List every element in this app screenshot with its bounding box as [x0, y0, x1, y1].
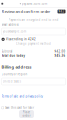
staticText: Total due today — [1, 54, 24, 57]
staticText: Subtotal — [1, 50, 12, 53]
staticText: $42 — [58, 10, 64, 13]
button[interactable]: Save this card for later — [1, 106, 65, 109]
staticText: Change payment method — [16, 42, 51, 45]
button[interactable]: Terms of sale and privacy policy — [1, 95, 65, 98]
staticText: you@example.com — [3, 30, 26, 33]
button[interactable]: Place order — [19, 110, 34, 118]
staticText: Visa ending in 4242 — [6, 37, 36, 41]
staticText: Place order — [22, 110, 30, 118]
button[interactable]: Close — [0, 1, 5, 6]
staticText: Payments are encrypted end to end — [8, 18, 58, 22]
staticText: Billing address — [1, 64, 31, 70]
staticText: Terms of sale and privacy policy — [1, 95, 42, 98]
staticText: $42.00 — [54, 50, 65, 53]
staticText: $45.36 — [54, 54, 65, 57]
staticText: Email address — [1, 23, 18, 26]
staticText: Save this card for later — [5, 106, 34, 109]
staticText: Review and confirm order — [1, 9, 50, 14]
staticText: Country or region — [1, 72, 27, 76]
staticText: pay.acme-store.com — [22, 2, 47, 5]
staticText: United States — [3, 80, 21, 83]
